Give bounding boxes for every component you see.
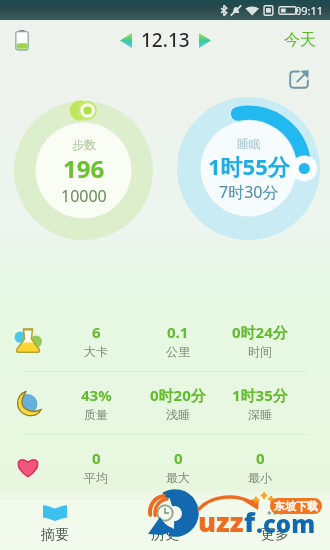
button[interactable]: Next day (195, 27, 215, 53)
staticText: 0时20分 (150, 385, 206, 405)
button[interactable]: 步数 (14, 101, 153, 240)
staticText: 43% (81, 385, 112, 405)
staticText: 步数 (72, 137, 96, 152)
button[interactable]: 摘要 (0, 498, 110, 550)
staticText: 10000 (61, 185, 107, 207)
staticText: 公里 (166, 344, 190, 359)
staticText: f (244, 503, 256, 540)
button[interactable]: 睡眠 (177, 97, 320, 240)
staticText: 0.1 (167, 322, 189, 342)
button[interactable]: 0 (0, 435, 330, 497)
button[interactable]: 更多 (220, 498, 330, 550)
staticText: 平均 (84, 470, 108, 485)
staticText: 睡眠 (237, 136, 261, 151)
staticText: 浅睡 (166, 407, 190, 422)
staticText: 0时24分 (232, 322, 288, 342)
staticText: 今天 (284, 30, 316, 50)
staticText: 09:11 (295, 3, 324, 18)
staticText: 0 (256, 448, 265, 468)
staticText: 最大 (166, 470, 190, 485)
staticText: 深睡 (248, 407, 272, 422)
staticText: 最小 (248, 470, 272, 485)
staticText: 0 (174, 448, 183, 468)
staticText: 1时55分 (208, 151, 290, 181)
staticText: 更多 (261, 526, 289, 544)
staticText: uzz (198, 503, 244, 540)
button[interactable]: 43% (0, 372, 330, 434)
staticText: 1时35分 (232, 385, 288, 405)
staticText: 12.13 (141, 27, 190, 53)
staticText: 摘要 (41, 526, 69, 544)
button[interactable]: 今天 (278, 24, 322, 56)
button[interactable]: Battery status (8, 26, 36, 54)
staticText: 7时30分 (219, 181, 279, 203)
staticText: 东坡下载 (274, 499, 318, 513)
staticText: 质量 (84, 407, 108, 422)
staticText: .com (256, 507, 316, 540)
button[interactable]: Previous day (116, 27, 136, 53)
staticText: 历史 (151, 526, 179, 544)
button[interactable]: 历史 (110, 498, 220, 550)
staticText: 196 (63, 152, 105, 185)
staticText: 时间 (248, 344, 272, 359)
staticText: 0 (92, 448, 101, 468)
staticText: 6 (92, 322, 101, 342)
staticText: 大卡 (84, 344, 108, 359)
button[interactable]: Share (286, 66, 312, 92)
button[interactable]: 6 (0, 309, 330, 371)
